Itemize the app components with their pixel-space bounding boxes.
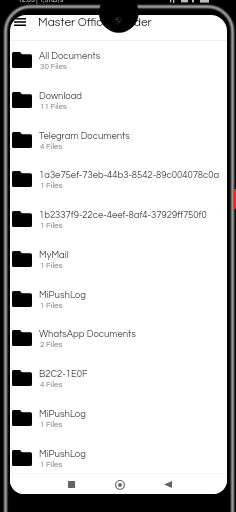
staticText: All Documents	[39, 51, 101, 61]
button[interactable]: 1a3e75ef-73eb-44b3-8542-89c004078c0a	[10, 169, 227, 209]
button[interactable]: MiPushLog	[10, 408, 227, 448]
staticText: 2 Files	[40, 340, 63, 348]
staticText: 1a3e75ef-73eb-44b3-8542-89c004078c0a	[39, 170, 220, 180]
button[interactable]: WhatsApp Documents	[10, 328, 227, 368]
staticText: MiPushLog	[39, 409, 86, 419]
staticText: Download	[39, 91, 83, 101]
staticText: MyMail	[39, 250, 69, 260]
staticText: MiPushLog	[39, 290, 86, 300]
staticText: 1 Files	[40, 460, 63, 468]
button[interactable]: Back	[157, 475, 179, 494]
staticText: B2C2-1E0F	[39, 369, 88, 379]
staticText: 11 Files	[40, 102, 67, 110]
button[interactable]: 1b2337f9-22ce-4eef-8af4-37929ff750f0	[10, 209, 227, 249]
staticText: 1 Files	[40, 420, 63, 428]
staticText: 1 Files	[40, 181, 63, 189]
button[interactable]: Home	[109, 475, 131, 494]
staticText: 1 Files	[40, 221, 63, 229]
staticText: 4 Files	[40, 142, 63, 150]
staticText: Master Office Reader	[38, 16, 152, 28]
button[interactable]: B2C2-1E0F	[10, 368, 227, 408]
staticText: WhatsApp Documents	[39, 329, 136, 339]
button[interactable]: Recent apps	[60, 475, 82, 494]
staticText: 1 Files	[40, 301, 63, 309]
button[interactable]: MyMail	[10, 249, 227, 289]
button[interactable]: Telegram Documents	[10, 130, 227, 170]
button[interactable]: MiPushLog	[10, 289, 227, 329]
staticText: 12:09 | 1,9KB/s	[18, 0, 64, 3]
button[interactable]: Open navigation drawer	[10, 15, 32, 39]
button[interactable]: Download	[10, 90, 227, 130]
button[interactable]: MiPushLog	[10, 448, 227, 488]
button[interactable]: All Documents	[10, 50, 227, 90]
staticText: 1b2337f9-22ce-4eef-8af4-37929ff750f0	[39, 210, 207, 220]
staticText: 30 Files	[40, 62, 67, 70]
staticText: Telegram Documents	[39, 131, 130, 141]
staticText: 1 Files	[40, 261, 63, 269]
staticText: 4 Files	[40, 380, 63, 388]
staticText: MiPushLog	[39, 449, 86, 459]
